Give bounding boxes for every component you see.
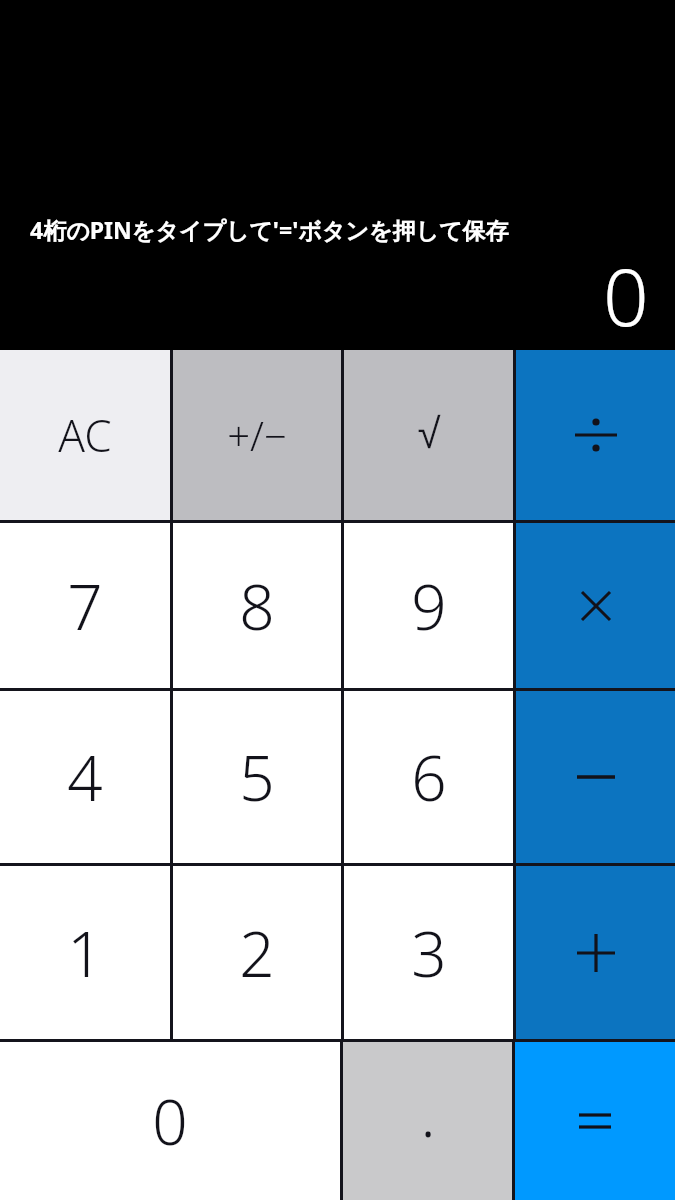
staticText: 9 <box>411 564 447 648</box>
staticText: 1 <box>67 911 103 995</box>
button[interactable]: 4 <box>0 691 170 863</box>
button[interactable]: 3 <box>344 866 513 1039</box>
button[interactable]: 9 <box>344 523 513 688</box>
button[interactable]: . <box>343 1042 512 1200</box>
button[interactable]: 8 <box>173 523 341 688</box>
staticText: 7 <box>67 564 103 648</box>
button[interactable]: AC <box>0 350 170 520</box>
staticText: AC <box>58 405 112 465</box>
staticText: +/− <box>227 408 287 462</box>
staticText: 4桁のPINをタイプして'='ボタンを押して保存 <box>30 214 509 245</box>
button[interactable]: 1 <box>0 866 170 1039</box>
staticText: . <box>420 1071 436 1155</box>
staticText: 8 <box>239 564 275 648</box>
staticText: 0 <box>152 1079 188 1163</box>
staticText: 5 <box>239 735 275 819</box>
staticText: 0 <box>603 240 649 349</box>
button[interactable]: 7 <box>0 523 170 688</box>
button[interactable]: Divide <box>516 350 675 520</box>
button[interactable]: Plus <box>516 866 675 1039</box>
staticText: 3 <box>411 911 447 995</box>
staticText: 6 <box>411 735 447 819</box>
button[interactable]: Equals <box>515 1042 675 1200</box>
button[interactable]: Multiply <box>516 523 675 688</box>
button[interactable]: √ <box>344 350 513 520</box>
button[interactable]: Minus <box>516 691 675 863</box>
button[interactable]: +/− <box>173 350 341 520</box>
button[interactable]: 2 <box>173 866 341 1039</box>
staticText: 2 <box>239 911 275 995</box>
staticText: √ <box>417 410 441 457</box>
button[interactable]: 0 <box>0 1042 340 1200</box>
staticText: 4 <box>67 735 103 819</box>
button[interactable]: 6 <box>344 691 513 863</box>
button[interactable]: 5 <box>173 691 341 863</box>
